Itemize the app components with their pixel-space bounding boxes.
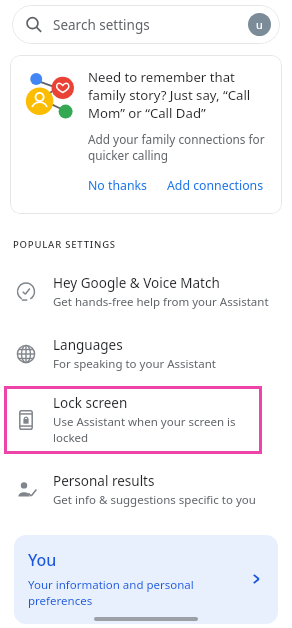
- button[interactable]: Add connections: [161, 173, 270, 198]
- staticText: POPULAR SETTINGS: [13, 238, 116, 251]
- staticText: Your information and personal preference…: [28, 577, 248, 609]
- staticText: You: [28, 549, 57, 571]
- button[interactable]: Hey Google & Voice Match: [0, 268, 292, 316]
- staticText: For speaking to your Assistant: [53, 356, 216, 372]
- button[interactable]: Personal results: [0, 466, 292, 514]
- staticText: Languages: [53, 336, 123, 354]
- staticText: Search settings: [53, 16, 150, 34]
- button[interactable]: You: [14, 535, 278, 624]
- staticText: u: [256, 17, 263, 32]
- button[interactable]: No thanks: [82, 173, 153, 198]
- staticText: Add your family connections for quicker …: [88, 131, 269, 163]
- staticText: Add connections: [167, 177, 264, 194]
- button[interactable]: Account: [248, 13, 271, 36]
- staticText: Use Assistant when your screen is locked: [53, 414, 262, 446]
- staticText: Need to remember that family story? Just…: [88, 68, 269, 122]
- staticText: Get hands-free help from your Assistant: [53, 294, 269, 310]
- staticText: Personal results: [53, 472, 155, 490]
- button[interactable]: Lock screen: [4, 386, 262, 454]
- staticText: Get info & suggestions specific to you: [53, 492, 256, 508]
- button[interactable]: Languages: [0, 330, 292, 378]
- staticText: Hey Google & Voice Match: [53, 274, 220, 292]
- staticText: No thanks: [88, 177, 147, 194]
- staticText: Lock screen: [53, 394, 128, 412]
- button[interactable]: Search settings: [12, 5, 280, 44]
